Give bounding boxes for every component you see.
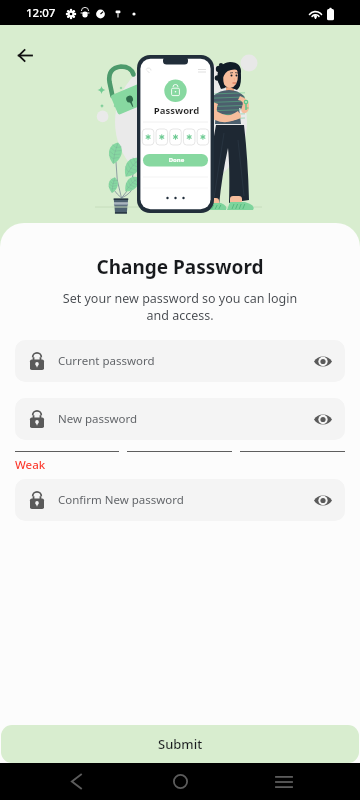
staticText: Weak	[15, 457, 46, 473]
staticText: Current password	[58, 353, 155, 369]
button[interactable]: Show password	[306, 344, 340, 378]
staticText: Change Password	[0, 254, 360, 280]
button[interactable]: Show password	[306, 483, 340, 517]
staticText: Confirm New password	[58, 492, 184, 508]
button[interactable]: Show password	[306, 402, 340, 436]
staticText: Password	[139, 104, 214, 117]
staticText: New password	[58, 411, 138, 427]
staticText: Submit	[158, 735, 203, 753]
button[interactable]: Home	[158, 763, 202, 800]
button[interactable]: New password	[15, 398, 345, 440]
button[interactable]: Current password	[15, 340, 345, 382]
button[interactable]: Back	[7, 37, 43, 73]
staticText: 12:07	[26, 5, 56, 21]
button[interactable]: Confirm New password	[15, 479, 345, 521]
button[interactable]: Recent apps	[262, 763, 306, 800]
staticText: Set your new password so you can login a…	[0, 290, 360, 324]
button[interactable]: Back	[54, 763, 98, 800]
button[interactable]: Submit	[1, 725, 359, 763]
staticText: Done	[139, 156, 214, 164]
